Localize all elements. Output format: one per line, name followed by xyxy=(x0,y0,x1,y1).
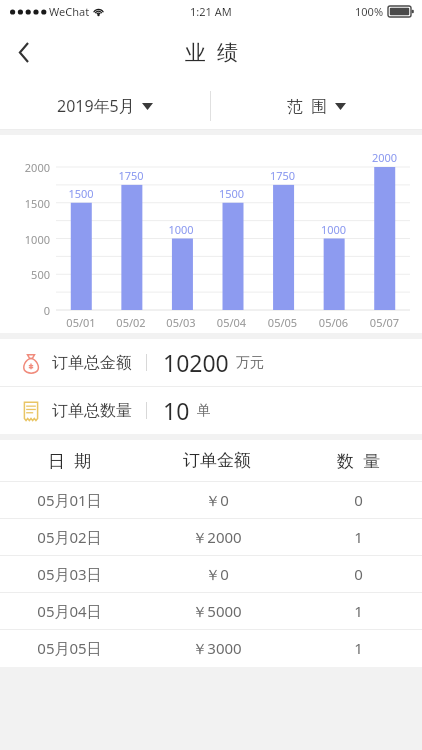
staticText: 1500 xyxy=(206,186,257,201)
button[interactable]: 05月01日 xyxy=(0,482,422,518)
staticText: 05月02日 xyxy=(37,527,102,547)
staticText: 范 围 xyxy=(287,95,328,117)
staticText: 10 xyxy=(163,395,190,426)
staticText: 1 xyxy=(354,527,363,547)
staticText: 1000 xyxy=(156,222,206,237)
staticText: 10200 xyxy=(163,347,229,378)
staticText: 100% xyxy=(355,4,384,19)
staticText: 05月03日 xyxy=(37,564,102,584)
staticText: 数 量 xyxy=(337,449,380,472)
button[interactable]: 订单总金额 xyxy=(0,339,422,386)
staticText: 订单总数量 xyxy=(52,401,132,421)
staticText: 05/06 xyxy=(308,315,359,330)
staticText: ￥0 xyxy=(205,490,229,510)
staticText: 500 xyxy=(4,267,50,282)
staticText: 05月05日 xyxy=(37,638,102,658)
staticText: 2000 xyxy=(4,160,50,175)
staticText: 1000 xyxy=(4,232,50,247)
staticText: 1:21 AM xyxy=(190,4,232,19)
staticText: 1 xyxy=(354,638,363,658)
staticText: ￥3000 xyxy=(192,638,242,658)
button[interactable]: 05月03日 xyxy=(0,556,422,592)
staticText: 1 xyxy=(354,601,363,621)
staticText: 业 绩 xyxy=(185,38,238,67)
button[interactable]: 2019年5月 xyxy=(0,82,210,130)
button[interactable]: 返回 xyxy=(0,28,48,76)
button[interactable]: 05月05日 xyxy=(0,630,422,666)
staticText: 单 xyxy=(197,402,211,420)
staticText: 05/01 xyxy=(56,315,106,330)
button[interactable]: 订单总数量 xyxy=(0,387,422,434)
staticText: 订单金额 xyxy=(183,450,251,471)
staticText: 万元 xyxy=(236,354,264,372)
staticText: WeChat xyxy=(49,4,90,19)
staticText: ￥5000 xyxy=(192,601,242,621)
staticText: 0 xyxy=(354,564,363,584)
staticText: ￥0 xyxy=(205,564,229,584)
staticText: 05/07 xyxy=(359,315,410,330)
button[interactable]: 05月02日 xyxy=(0,519,422,555)
staticText: 0 xyxy=(4,303,50,318)
staticText: 1000 xyxy=(308,222,359,237)
staticText: 2000 xyxy=(359,150,410,165)
staticText: 05/04 xyxy=(206,315,257,330)
staticText: 05/05 xyxy=(257,315,308,330)
staticText: 05月04日 xyxy=(37,601,102,621)
staticText: 05/02 xyxy=(106,315,156,330)
staticText: 2019年5月 xyxy=(57,95,135,117)
staticText: 订单总金额 xyxy=(52,353,132,373)
staticText: ￥2000 xyxy=(192,527,242,547)
staticText: 1500 xyxy=(4,196,50,211)
button[interactable]: 05月04日 xyxy=(0,593,422,629)
staticText: 1750 xyxy=(106,168,156,183)
button[interactable]: 范 围 xyxy=(211,82,422,130)
staticText: 1750 xyxy=(257,168,308,183)
staticText: 05/03 xyxy=(156,315,206,330)
staticText: 0 xyxy=(354,490,363,510)
staticText: 1500 xyxy=(56,186,106,201)
staticText: 05月01日 xyxy=(37,490,102,510)
staticText: 日 期 xyxy=(48,449,91,472)
